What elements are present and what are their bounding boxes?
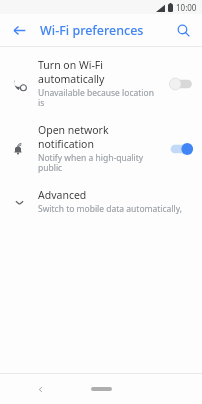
staticText: 10:00 <box>176 2 197 13</box>
button[interactable]: Back <box>6 17 32 43</box>
staticText: Open network notification <box>38 123 162 151</box>
staticText: Unavailable because location is turned o… <box>38 87 162 109</box>
button[interactable]: Advanced <box>0 181 202 222</box>
button[interactable]: Back <box>30 379 50 399</box>
staticText: Switch to mobile data automatically, Ins… <box>38 203 196 215</box>
button[interactable]: Turn on Wi-Fi automatically <box>0 51 202 116</box>
button[interactable]: Home <box>81 381 121 397</box>
staticText: Notify when a high-quality public networ… <box>38 152 162 174</box>
staticText: Advanced <box>38 188 87 202</box>
button[interactable]: Open network notification <box>166 138 196 160</box>
staticText: Turn on Wi-Fi automatically <box>38 58 162 86</box>
button[interactable]: Open network notification <box>0 116 202 181</box>
button[interactable]: Turn on Wi-Fi automatically <box>166 73 196 95</box>
button[interactable]: Search <box>170 17 196 43</box>
staticText: Wi-Fi preferences <box>40 22 144 39</box>
